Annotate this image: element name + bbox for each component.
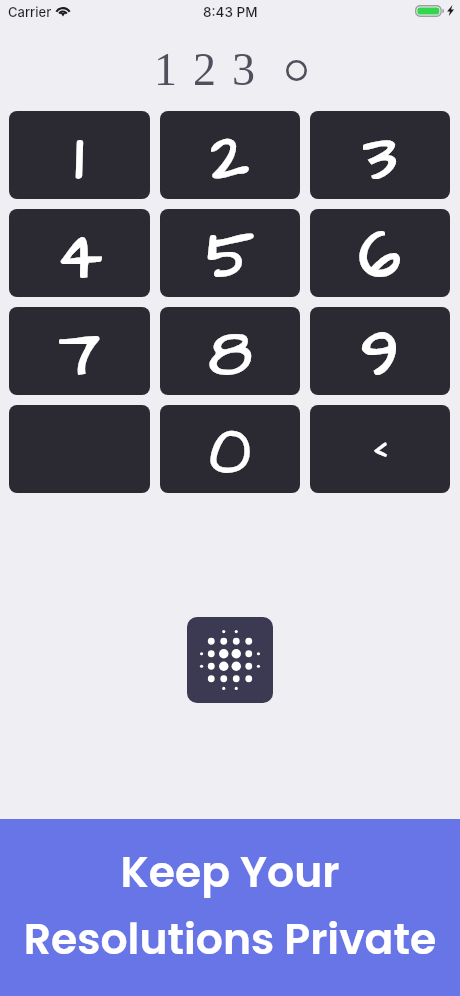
button[interactable]: 1	[9, 111, 150, 199]
button[interactable]: 0	[160, 405, 300, 493]
button[interactable]: 6	[310, 209, 450, 297]
staticText: <	[372, 424, 389, 471]
other: Battery charging	[415, 5, 443, 17]
staticText: 9	[361, 309, 399, 395]
button[interactable]: App logo	[187, 617, 273, 703]
staticText: Keep Your	[0, 842, 460, 901]
staticText: 8	[209, 309, 252, 395]
button[interactable]: 8	[160, 307, 300, 395]
staticText: 3	[363, 113, 397, 199]
staticText: 5	[207, 211, 254, 297]
staticText: 4	[57, 211, 102, 297]
button[interactable]: 7	[9, 307, 150, 395]
staticText: 8:43 PM	[203, 4, 258, 20]
button[interactable]	[9, 405, 150, 493]
other: Wi-Fi	[55, 5, 71, 17]
button[interactable]: 9	[310, 307, 450, 395]
button[interactable]: 2	[160, 111, 300, 199]
staticText: Resolutions Private	[0, 909, 460, 968]
staticText: 1	[75, 113, 84, 199]
staticText: 7	[59, 309, 100, 395]
staticText: 6	[359, 211, 401, 297]
staticText: 2	[211, 113, 249, 199]
button[interactable]: Delete	[310, 405, 450, 493]
button[interactable]: 4	[9, 209, 150, 297]
staticText: Carrier	[8, 4, 52, 20]
staticText: 0	[209, 407, 251, 493]
button[interactable]: 3	[310, 111, 450, 199]
button[interactable]: 5	[160, 209, 300, 297]
staticText: 1 2 3	[153, 44, 256, 95]
